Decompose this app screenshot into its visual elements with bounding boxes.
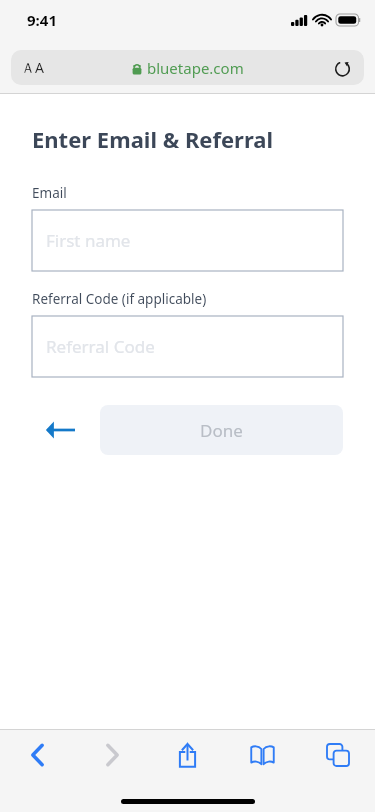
button[interactable]: Back bbox=[0, 729, 75, 781]
button[interactable]: Forward bbox=[75, 729, 150, 781]
button[interactable]: Reload page bbox=[328, 54, 356, 82]
staticText: First name bbox=[46, 229, 131, 252]
button[interactable]: First name bbox=[32, 210, 343, 271]
staticText: ＡA bbox=[21, 58, 44, 77]
button[interactable]: Bookmarks bbox=[225, 729, 300, 781]
staticText: Enter Email & Referral bbox=[32, 124, 274, 154]
staticText: Referral Code (if applicable) bbox=[32, 290, 207, 308]
button[interactable]: Share bbox=[150, 729, 225, 781]
button[interactable]: Tabs bbox=[300, 729, 375, 781]
staticText: Done bbox=[200, 419, 243, 442]
staticText: bluetape.com bbox=[147, 58, 244, 78]
button[interactable]: Back bbox=[32, 405, 88, 455]
button[interactable]: Done bbox=[100, 405, 343, 455]
button[interactable]: Referral Code bbox=[32, 316, 343, 377]
button[interactable]: ＡA bbox=[11, 50, 364, 85]
staticText: 9:41 bbox=[27, 10, 57, 30]
staticText: Email bbox=[32, 184, 67, 202]
staticText: Referral Code bbox=[46, 335, 155, 358]
